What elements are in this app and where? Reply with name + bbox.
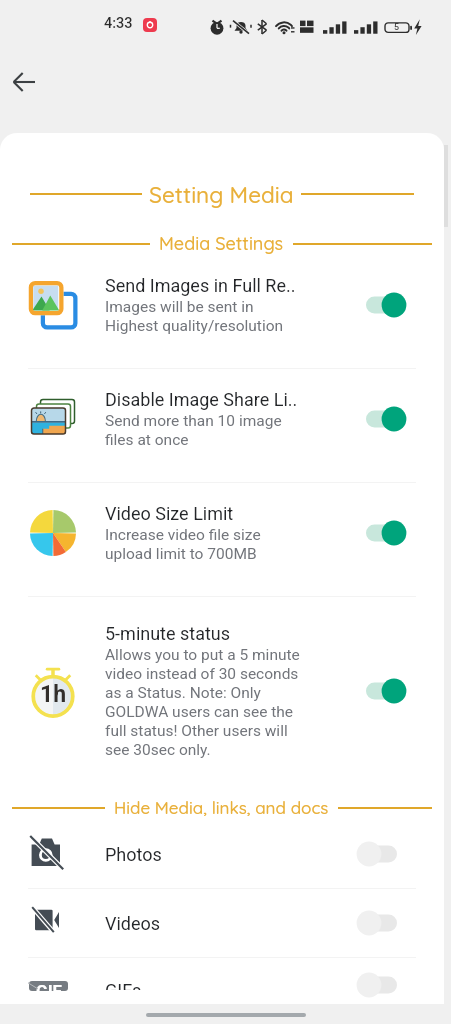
staticText: Videos xyxy=(105,913,362,934)
button[interactable]: Photos xyxy=(0,820,444,888)
button[interactable]: Send Images in Full Re.. xyxy=(0,255,444,368)
staticText: Disable Image Share Li.. xyxy=(105,389,298,410)
staticText: GIF xyxy=(36,981,62,991)
button[interactable]: Toggle off xyxy=(366,839,406,869)
staticText: Media Settings xyxy=(159,232,284,255)
button[interactable]: Toggle on xyxy=(366,676,406,706)
button[interactable]: Toggle on xyxy=(366,290,406,320)
staticText: Video Size Limit xyxy=(105,503,234,524)
staticText: Send Images in Full Re.. xyxy=(105,275,296,296)
staticText: 4:33 xyxy=(104,15,133,32)
button[interactable]: Video Size Limit xyxy=(0,483,444,596)
button[interactable]: GIF xyxy=(0,958,444,1004)
button[interactable]: Toggle off xyxy=(366,908,406,938)
staticText: 1h xyxy=(40,681,67,708)
staticText: Setting Media xyxy=(149,180,294,208)
button[interactable]: Toggle on xyxy=(366,404,406,434)
button[interactable]: Back xyxy=(3,61,45,103)
button[interactable]: Toggle off xyxy=(366,980,406,990)
button[interactable]: 1h xyxy=(0,597,444,781)
staticText: Increase video file size upload limit to… xyxy=(105,526,261,563)
staticText: Send more than 10 image files at once xyxy=(105,412,282,449)
staticText: 5-minute status xyxy=(105,623,231,644)
button[interactable]: Toggle on xyxy=(366,518,406,548)
staticText: Photos xyxy=(105,844,362,865)
button[interactable]: Disable Image Share Li.. xyxy=(0,369,444,482)
staticText: Hide Media, links, and docs xyxy=(114,797,329,818)
button[interactable]: Videos xyxy=(0,889,444,957)
staticText: 5 xyxy=(394,22,400,33)
staticText: Allows you to put a 5 minute video inste… xyxy=(105,646,300,759)
staticText: Images will be sent in Highest quality/r… xyxy=(105,298,284,335)
staticText: GIFs xyxy=(105,980,362,990)
